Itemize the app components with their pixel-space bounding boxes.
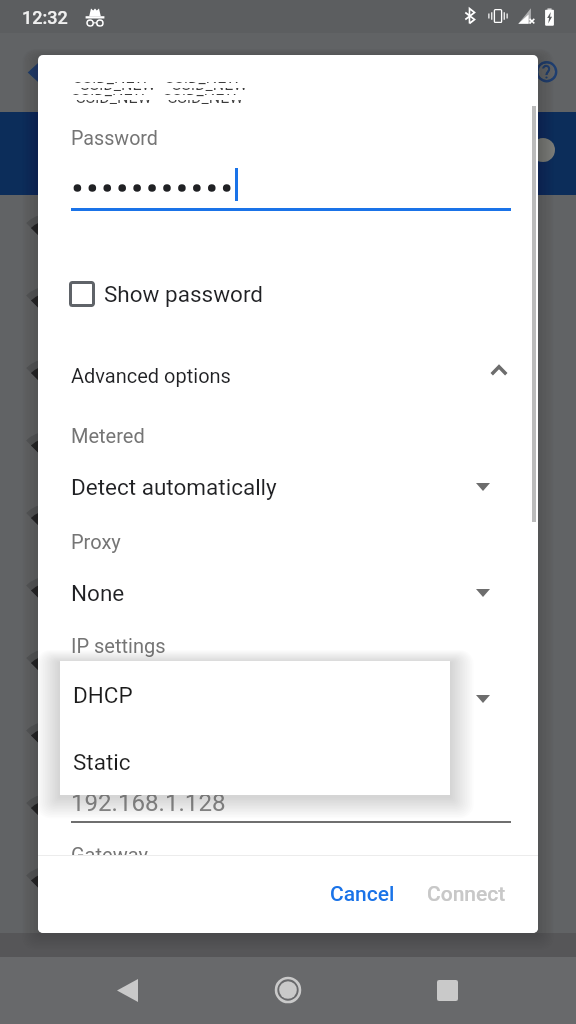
staticText: DHCP <box>73 682 133 708</box>
staticText: DHCP <box>71 686 131 712</box>
button[interactable]: DHCP <box>60 661 450 728</box>
staticText: SSID_NEW SSID_NEW <box>80 88 248 91</box>
button[interactable]: Cancel <box>318 876 407 913</box>
button[interactable]: Back <box>103 966 151 1014</box>
staticText: None <box>71 580 125 606</box>
staticText: Static <box>73 749 131 775</box>
staticText: Metered <box>71 424 145 447</box>
button[interactable]: Home <box>264 966 312 1014</box>
button[interactable]: None <box>38 575 538 615</box>
staticText: Advanced options <box>71 364 231 387</box>
staticText: SSID_NEW SSID_NEW <box>73 82 241 85</box>
staticText: 12:32 <box>22 7 68 28</box>
button[interactable]: Detect automatically <box>38 469 538 509</box>
button[interactable]: Static <box>60 728 450 795</box>
staticText: Proxy <box>71 530 121 553</box>
staticText: 192.168.1.128 <box>71 789 226 817</box>
button[interactable]: Connect <box>415 876 518 913</box>
staticText: Gateway <box>71 843 148 855</box>
button[interactable]: Recent apps <box>423 966 471 1014</box>
staticText: SSID_NEW SSID_NEW <box>76 100 244 104</box>
button[interactable]: Advanced options <box>38 355 538 401</box>
staticText: Detect automatically <box>71 474 277 500</box>
staticText: Password <box>71 127 158 150</box>
staticText: IP settings <box>71 634 166 657</box>
button[interactable]: Show password <box>38 271 538 317</box>
button[interactable]: DHCP <box>38 681 538 721</box>
staticText: SSID_NEW SSID_NEW <box>71 94 239 97</box>
staticText: Show password <box>104 281 264 307</box>
